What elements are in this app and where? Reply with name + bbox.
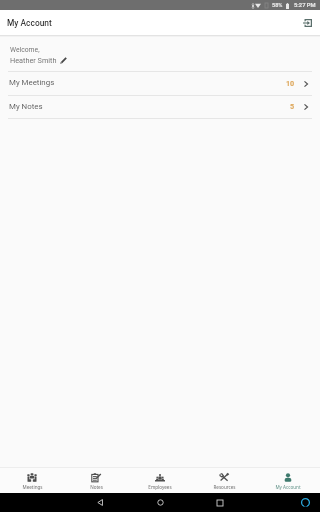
staticText: Welcome,: [10, 46, 40, 54]
staticText: Heather Smith: [10, 56, 57, 65]
staticText: 58%: [272, 2, 283, 9]
staticText: 10: [286, 79, 295, 87]
button[interactable]: My Account: [256, 468, 320, 493]
staticText: Meetings: [22, 484, 43, 490]
staticText: My Notes: [9, 102, 43, 111]
button[interactable]: Employees: [128, 468, 192, 493]
button[interactable]: Resources: [192, 468, 256, 493]
button[interactable]: Notes: [64, 468, 128, 493]
staticText: Resources: [213, 484, 236, 490]
staticText: My Meetings: [9, 78, 55, 87]
staticText: My Account: [7, 18, 52, 28]
staticText: 5: [290, 102, 295, 110]
staticText: Notes: [90, 484, 103, 490]
button[interactable]: Edit name: [58, 55, 69, 66]
staticText: 5:27 PM: [294, 2, 316, 9]
staticText: My Account: [275, 484, 301, 490]
button[interactable]: Log out: [298, 14, 316, 32]
button[interactable]: Meetings: [0, 468, 64, 493]
button[interactable]: My Meetings: [0, 72, 320, 95]
button[interactable]: My Notes: [0, 96, 320, 118]
staticText: Employees: [148, 484, 172, 490]
